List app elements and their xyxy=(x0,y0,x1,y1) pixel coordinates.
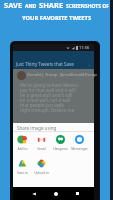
button[interactable]: Upload to Photos xyxy=(33,159,50,175)
staticText: Share image using xyxy=(17,125,57,131)
staticText: Hangouts xyxy=(53,147,68,151)
staticText: Gmail xyxy=(37,147,46,151)
button[interactable]: Back xyxy=(29,189,38,198)
staticText: Donald J. Trump @realDonaldTrump xyxy=(27,72,97,77)
staticText: Messenger xyxy=(71,147,88,151)
staticText: AND xyxy=(25,3,37,10)
staticText: SAVE xyxy=(4,0,23,10)
staticText: Just Thirty Tweets that Save xyxy=(16,61,74,67)
staticText: 11:56 xyxy=(79,45,90,50)
button[interactable]: Save to Drive xyxy=(14,159,31,175)
staticText: We're going to have Mexico pay for that … xyxy=(20,82,79,113)
staticText: SHARE xyxy=(39,0,64,10)
staticText: SCREENSHOTS OF xyxy=(66,3,109,10)
button[interactable]: Add to Maps xyxy=(14,135,31,151)
button[interactable]: Hangouts xyxy=(52,135,69,151)
staticText: YOUR FAVORITE TWEETS xyxy=(22,14,92,22)
staticText: Add to Maps xyxy=(14,147,31,151)
staticText: Upload to Photos xyxy=(33,171,50,175)
button[interactable]: Gmail xyxy=(33,135,50,151)
button[interactable]: Messenger xyxy=(71,135,88,151)
button[interactable]: Recent apps xyxy=(73,189,82,198)
button[interactable]: Home xyxy=(51,189,60,198)
staticText: Save to Drive xyxy=(14,171,31,175)
